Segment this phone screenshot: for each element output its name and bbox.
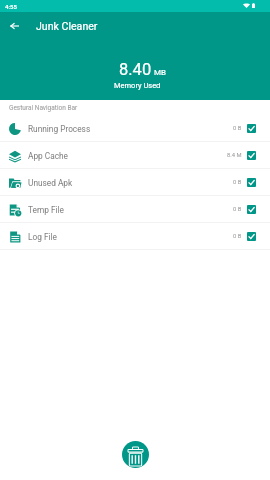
staticText: App Cache: [28, 151, 69, 161]
staticText: 0 B: [233, 206, 242, 213]
button[interactable]: Log File: [0, 223, 270, 250]
staticText: 4:55: [5, 3, 17, 10]
button[interactable]: Select App Cache: [247, 151, 256, 160]
button[interactable]: App Cache: [0, 142, 270, 169]
staticText: Running Process: [28, 124, 91, 134]
staticText: Temp File: [28, 205, 64, 215]
staticText: 0 B: [233, 233, 242, 240]
staticText: Log File: [28, 232, 57, 242]
button[interactable]: Back: [4, 16, 24, 36]
staticText: MB: [154, 68, 166, 77]
staticText: Memory Used: [114, 81, 161, 90]
button[interactable]: Unused Apk: [0, 169, 270, 196]
staticText: Junk Cleaner: [36, 20, 98, 32]
staticText: 8.40: [119, 60, 152, 79]
button[interactable]: Select Log File: [247, 232, 256, 241]
button[interactable]: Clean junk files: [122, 441, 149, 468]
button[interactable]: Select Running Process: [247, 124, 256, 133]
button[interactable]: Running Process: [0, 115, 270, 142]
staticText: 8.4 M: [227, 152, 242, 159]
button[interactable]: Temp File: [0, 196, 270, 223]
button[interactable]: Select Unused Apk: [247, 178, 256, 187]
staticText: 0 B: [233, 125, 242, 132]
staticText: 0 B: [233, 179, 242, 186]
button[interactable]: Select Temp File: [247, 205, 256, 214]
staticText: Gestural Navigation Bar: [9, 104, 78, 112]
staticText: Unused Apk: [28, 178, 73, 188]
